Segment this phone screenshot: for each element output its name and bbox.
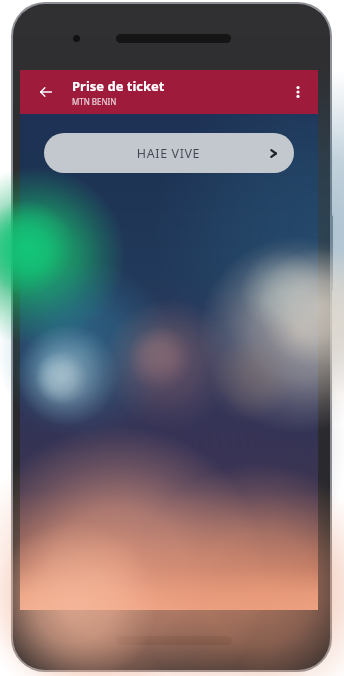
button[interactable]: Back bbox=[34, 80, 58, 104]
button[interactable]: More options bbox=[286, 80, 310, 104]
button[interactable]: HAIE VIVE bbox=[44, 133, 294, 173]
staticText: MTN BENIN bbox=[72, 96, 117, 107]
staticText: HAIE VIVE bbox=[70, 145, 267, 162]
staticText: Prise de ticket bbox=[72, 77, 165, 95]
